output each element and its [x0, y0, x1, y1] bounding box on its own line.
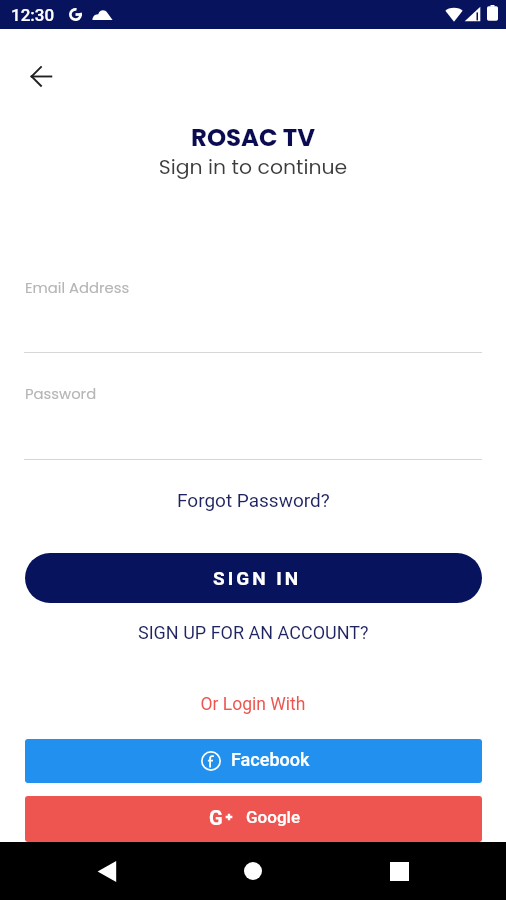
- staticText: Password: [25, 383, 97, 404]
- button[interactable]: Facebook: [25, 739, 482, 783]
- button[interactable]: Home: [229, 847, 277, 895]
- staticText: SIGN UP FOR AN ACCOUNT?: [138, 622, 369, 643]
- staticText: Email Address: [25, 277, 130, 298]
- button[interactable]: SIGN IN: [25, 553, 482, 603]
- staticText: Facebook: [231, 749, 310, 770]
- button[interactable]: Recent apps: [375, 847, 423, 895]
- button[interactable]: SIGN UP FOR AN ACCOUNT?: [130, 619, 377, 646]
- button[interactable]: Forgot Password?: [169, 485, 338, 515]
- button[interactable]: Back: [17, 52, 65, 100]
- staticText: ROSAC TV: [0, 120, 506, 154]
- staticText: Or Login With: [0, 694, 506, 715]
- staticText: 12:30: [11, 5, 55, 25]
- staticText: G: [209, 806, 223, 829]
- staticText: Forgot Password?: [177, 489, 330, 511]
- button[interactable]: G: [25, 796, 482, 842]
- staticText: SIGN IN: [213, 567, 302, 589]
- staticText: Sign in to continue: [0, 153, 506, 182]
- button[interactable]: Back: [83, 847, 131, 895]
- staticText: Google: [246, 807, 301, 827]
